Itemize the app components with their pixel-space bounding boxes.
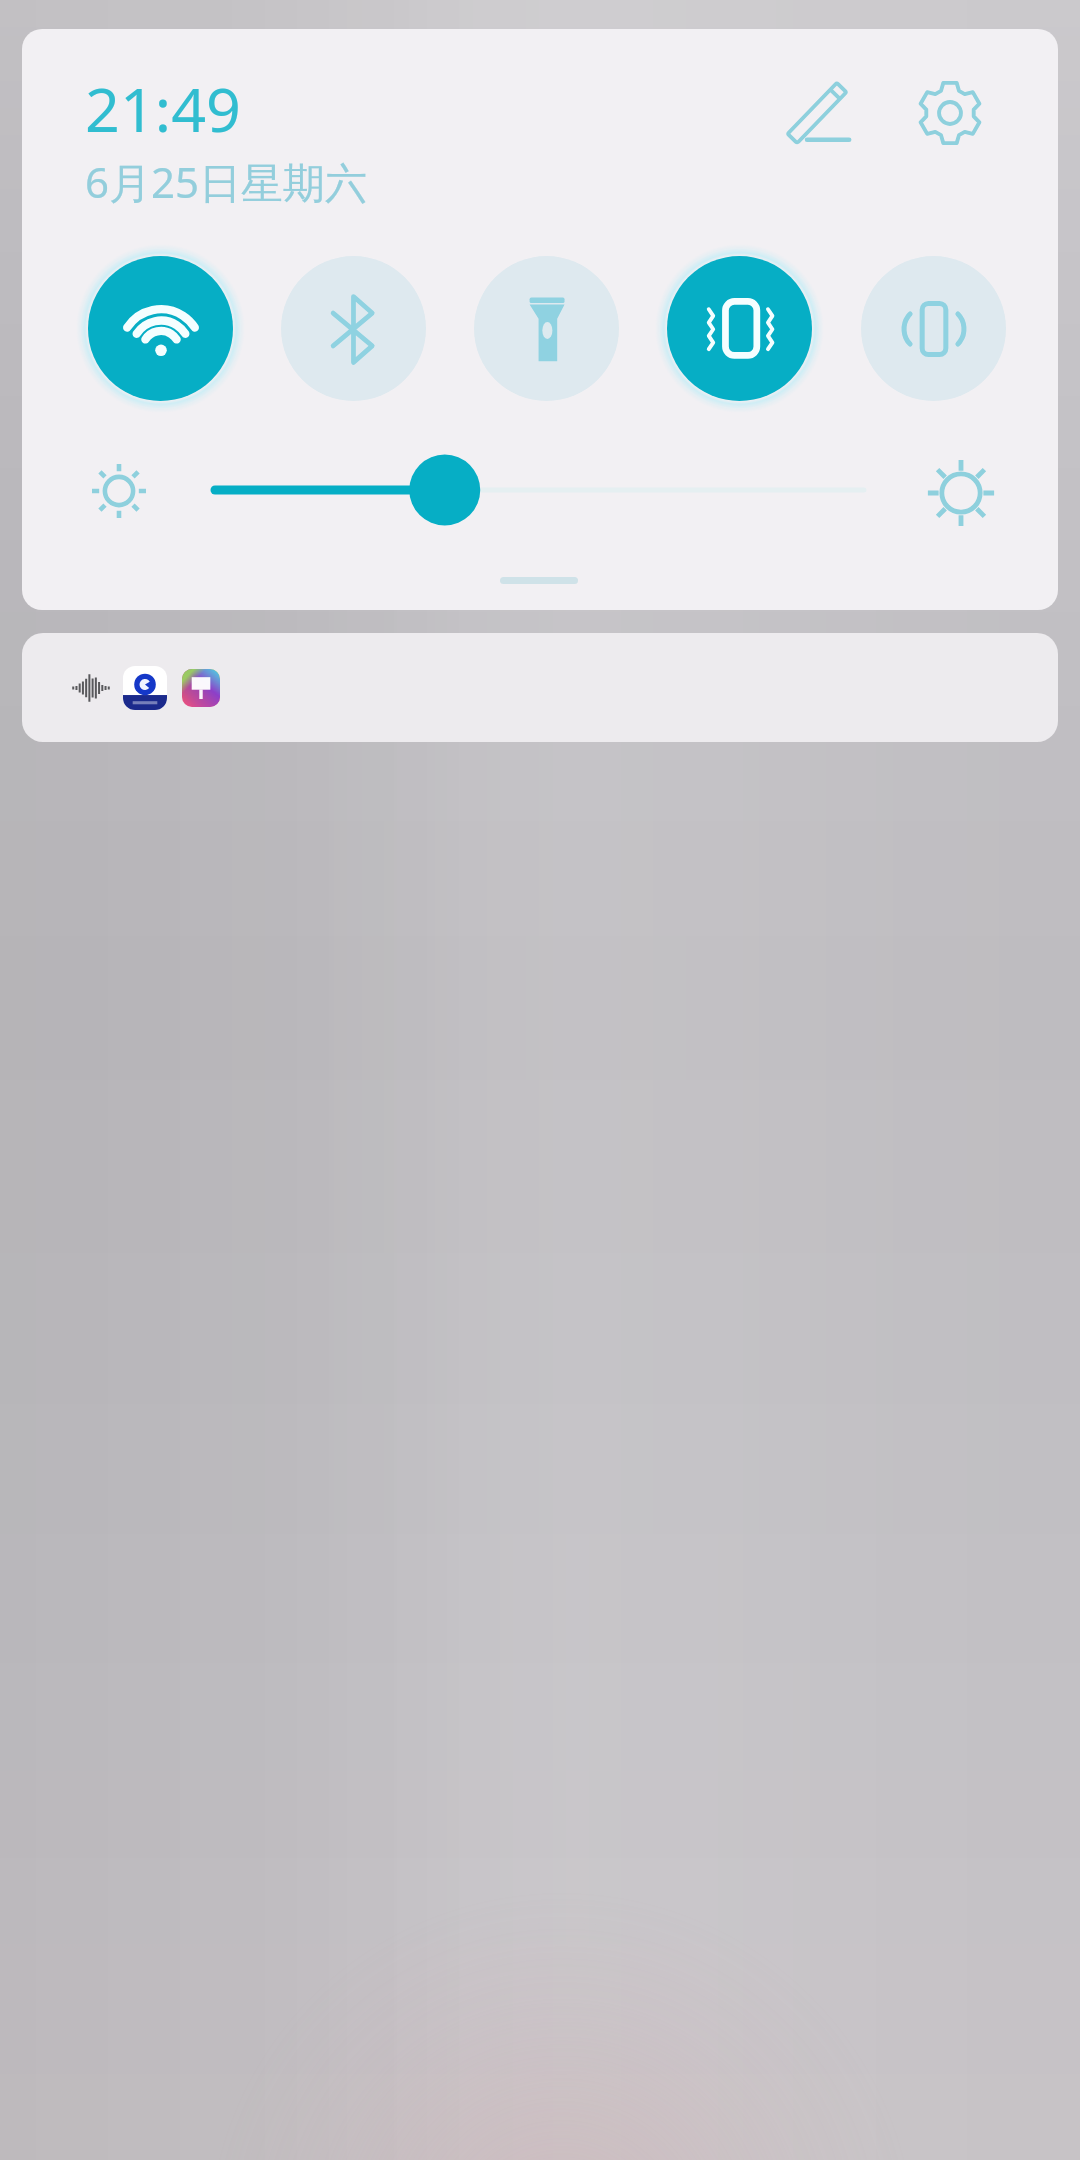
button[interactable]: Wi-Fi on (88, 256, 233, 401)
button[interactable]: Flashlight off (474, 256, 619, 401)
button[interactable]: Bluetooth off (281, 256, 426, 401)
button[interactable]: Edit quick settings (769, 65, 865, 161)
staticText: 21:49 (85, 67, 241, 150)
staticText: 6月25日星期六 (85, 153, 368, 210)
button[interactable]: Vibrate on (667, 256, 812, 401)
button[interactable] (22, 633, 1058, 742)
button[interactable]: Brightness (197, 452, 882, 528)
button[interactable]: Ring off (861, 256, 1006, 401)
button[interactable]: Settings (902, 65, 998, 161)
